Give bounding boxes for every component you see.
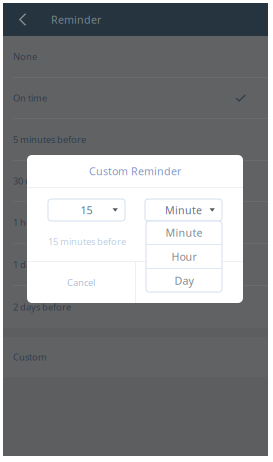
- staticText: Reminder: [51, 12, 101, 27]
- staticText: 15: [80, 203, 92, 217]
- staticText: Day: [174, 273, 193, 288]
- staticText: Minute: [165, 225, 202, 240]
- staticText: Custom: [13, 351, 47, 363]
- staticText: Minute: [165, 203, 202, 217]
- staticText: Hour: [171, 249, 196, 264]
- button[interactable]: 1 hour before: [3, 202, 268, 243]
- staticText: Cancel: [67, 276, 95, 289]
- button[interactable]: 5 minutes before: [3, 119, 268, 160]
- button[interactable]: Hour: [146, 245, 222, 268]
- button[interactable]: 15: [48, 199, 125, 221]
- staticText: 30 minutes before: [13, 175, 91, 187]
- button[interactable]: Minute: [146, 221, 222, 244]
- button[interactable]: OK: [136, 262, 243, 303]
- staticText: On time: [13, 92, 47, 104]
- staticText: 5 minutes before: [13, 133, 86, 146]
- button[interactable]: 30 minutes before: [3, 161, 268, 201]
- staticText: OK: [183, 276, 196, 289]
- button[interactable]: Day: [146, 269, 222, 292]
- button[interactable]: Back: [11, 3, 35, 36]
- staticText: 1 day before: [13, 258, 67, 271]
- button[interactable]: Minute: [145, 199, 222, 221]
- staticText: 15 minutes before: [48, 235, 126, 248]
- staticText: Custom Reminder: [89, 164, 181, 178]
- button[interactable]: 1 day before: [3, 244, 268, 285]
- staticText: 1 hour before: [13, 216, 73, 229]
- staticText: 2 days before: [13, 301, 71, 313]
- staticText: None: [13, 50, 37, 63]
- button[interactable]: On time: [3, 78, 268, 118]
- button[interactable]: Cancel: [27, 262, 135, 303]
- button[interactable]: 2 days before: [3, 286, 268, 328]
